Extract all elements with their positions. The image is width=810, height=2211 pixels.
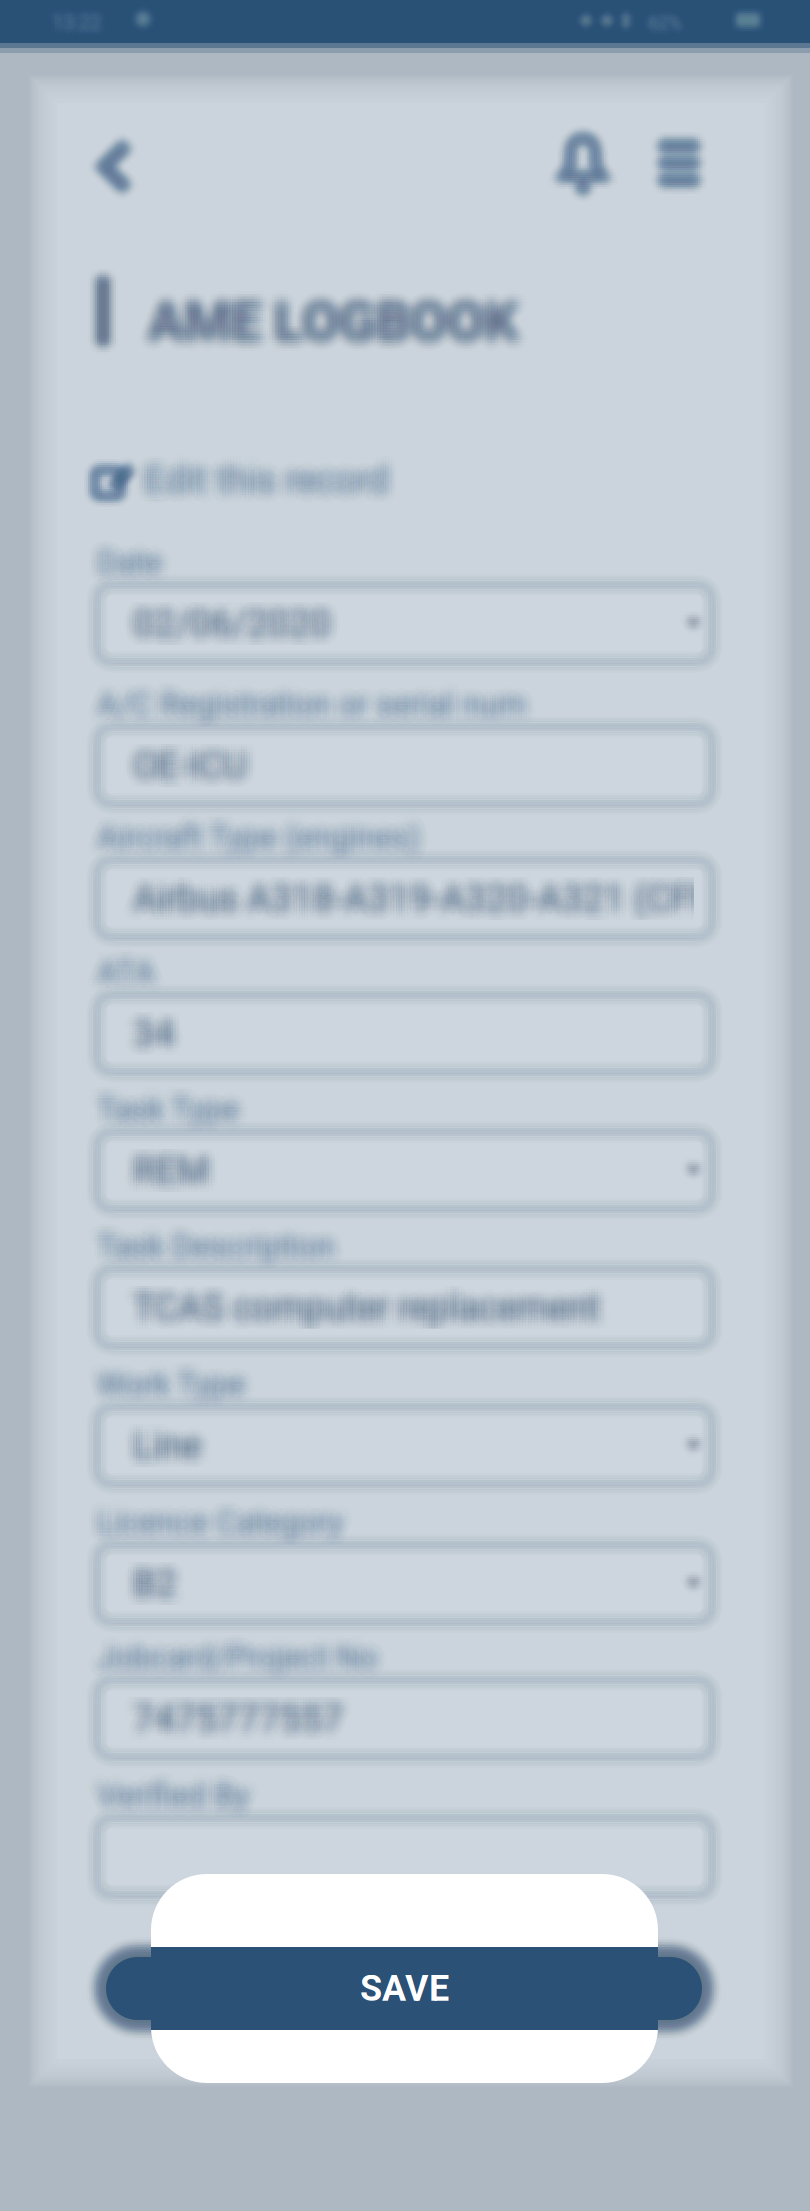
button[interactable]: 34 — [97, 995, 712, 1072]
staticText: Task Type — [97, 1098, 239, 1136]
staticText: TCAS computer replacement — [136, 1278, 603, 1321]
staticText: Edit this record — [149, 464, 394, 507]
staticText: Date — [97, 554, 162, 591]
staticText: Licence Category — [92, 1495, 338, 1533]
staticText: ATA — [105, 956, 163, 993]
staticText: Date — [92, 540, 157, 578]
staticText: TCAS computer replacement — [144, 1280, 611, 1323]
staticText: 7475777557 — [139, 1700, 349, 1743]
staticText: AME LOGBOOK — [140, 301, 510, 364]
staticText: Edit this record — [152, 453, 397, 496]
staticText: Line — [144, 1416, 212, 1459]
staticText: TCAS computer replacement — [141, 1286, 608, 1329]
staticText: Aircraft Type (engines) — [97, 824, 420, 861]
staticText: A/C Registration or serial num — [89, 693, 518, 731]
staticText: A/C Registration or serial num — [86, 677, 515, 715]
staticText: 62% — [650, 16, 684, 37]
staticText: Task Description — [86, 1230, 324, 1267]
staticText: 02/06/2020 — [136, 602, 334, 645]
staticText: A/C Registration or serial num — [105, 677, 534, 715]
staticText: Edit this record — [139, 464, 384, 507]
staticText: B2 — [125, 1559, 169, 1602]
button[interactable]: Back — [98, 140, 131, 193]
staticText: 62% — [648, 17, 682, 39]
staticText: 02/06/2020 — [122, 608, 320, 651]
button[interactable]: REM — [97, 1132, 712, 1209]
staticText: A/C Registration or serial num — [86, 685, 515, 723]
button[interactable]: Edit this record — [95, 457, 389, 503]
staticText: Verified By — [94, 1779, 246, 1816]
staticText: 62% — [646, 10, 680, 32]
staticText: 7475777557 — [122, 1700, 332, 1743]
staticText: A/C Registration or serial num — [97, 691, 526, 728]
staticText: Jobcard/Project No — [105, 1638, 385, 1676]
staticText: A/C Registration or serial num — [94, 674, 523, 712]
button[interactable]: Notifications — [562, 136, 604, 193]
staticText: ATA — [86, 945, 144, 983]
staticText: Airbus A318-A319-A320-A321 (CFM5 — [133, 885, 744, 928]
staticText: 34 — [139, 1001, 181, 1044]
staticText: TCAS computer replacement — [139, 1275, 606, 1318]
staticText: ATA — [86, 959, 144, 996]
staticText: Date — [100, 540, 165, 578]
staticText: Jobcard/Project No — [108, 1630, 388, 1668]
button[interactable]: B2 — [97, 1545, 712, 1622]
button[interactable]: Menu — [660, 141, 698, 185]
button[interactable]: Airbus A318-A319-A320-A321 (CFM5 — [97, 860, 712, 937]
staticText: Work Type — [105, 1357, 253, 1395]
staticText: Work Type — [86, 1362, 234, 1400]
staticText: A/C Registration or serial num — [86, 696, 515, 733]
staticText: 62% — [650, 19, 684, 41]
button[interactable]: 02/06/2020 — [97, 585, 712, 662]
staticText: REM — [141, 1155, 217, 1198]
staticText: TCAS computer replacement — [136, 1289, 603, 1332]
staticText: AME LOGBOOK — [137, 298, 507, 361]
staticText: Verified By — [92, 1784, 244, 1822]
staticText: Aircraft Type (engines) — [100, 826, 423, 864]
staticText: Airbus A318-A319-A320-A321 (CFM5 — [122, 885, 733, 928]
staticText: Line — [139, 1435, 207, 1478]
button[interactable]: OE-ICU — [97, 727, 712, 804]
staticText: AME LOGBOOK — [156, 301, 526, 364]
staticText: 02/06/2020 — [139, 610, 337, 653]
staticText: 7475777557 — [144, 1686, 354, 1729]
staticText: 13:22 — [52, 17, 101, 40]
staticText: Task Type — [108, 1093, 250, 1130]
staticText: A/C Registration or serial num — [92, 685, 521, 723]
staticText: B2 — [144, 1556, 188, 1599]
staticText: A/C Registration or serial num — [102, 677, 531, 715]
staticText: Date — [86, 538, 151, 575]
staticText: Task Description — [94, 1235, 332, 1273]
staticText: 34 — [122, 1015, 164, 1058]
staticText: Aircraft Type (engines) — [100, 813, 423, 850]
staticText: Task Type — [89, 1085, 231, 1122]
staticText: TCAS computer replacement — [127, 1297, 594, 1340]
button[interactable]: Line — [97, 1407, 712, 1484]
staticText: REM — [144, 1143, 220, 1186]
staticText: Line — [130, 1432, 198, 1475]
button[interactable]: SAVE — [151, 1947, 658, 2030]
staticText: 02/06/2020 — [130, 594, 328, 637]
staticText: Aircraft Type (engines) — [105, 813, 428, 850]
button[interactable] — [97, 1818, 712, 1895]
staticText: Licence Category — [105, 1514, 351, 1551]
staticText: ATA — [94, 959, 152, 996]
staticText: 62% — [652, 14, 686, 36]
staticText: 13:22 — [58, 3, 107, 27]
staticText: Licence Category — [92, 1500, 338, 1538]
staticText: 62% — [641, 7, 675, 28]
staticText: Task Type — [86, 1087, 228, 1125]
button[interactable]: 7475777557 — [97, 1680, 712, 1757]
staticText: Airbus A318-A319-A320-A321 (CFM5 — [139, 871, 750, 914]
staticText: Airbus A318-A319-A320-A321 (CFM5 — [136, 869, 747, 912]
staticText: Date — [89, 543, 154, 581]
staticText: Task Type — [102, 1090, 244, 1128]
staticText: Date — [105, 549, 170, 586]
staticText: Work Type — [105, 1371, 253, 1408]
staticText: A/C Registration or serial num — [97, 674, 526, 712]
staticText: A/C Registration or serial num — [86, 691, 515, 728]
staticText: Task Type — [100, 1098, 242, 1136]
staticText: Task Description — [105, 1233, 343, 1270]
staticText: A/C Registration or serial num — [94, 682, 523, 720]
button[interactable]: TCAS computer replacement — [97, 1269, 712, 1346]
